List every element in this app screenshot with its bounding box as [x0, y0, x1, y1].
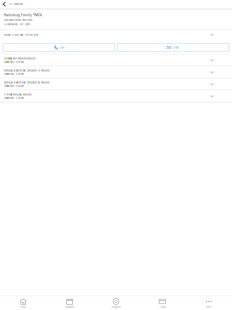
button[interactable]: Email: [117, 43, 229, 51]
staticText: Call: [59, 46, 64, 49]
staticText: Y Playhouse Hours: [4, 93, 31, 96]
staticText: until 9:00 pm: [10, 73, 24, 75]
staticText: until 9:00 pm: [10, 85, 24, 87]
button[interactable]: Open: [0, 30, 232, 43]
staticText: More: [206, 306, 211, 308]
staticText: until 8:00 pm: [10, 61, 24, 63]
button[interactable]: More: [186, 298, 232, 309]
staticText: Character Room Hours: [4, 57, 35, 60]
button[interactable]: Y Playhouse Hours: [0, 91, 232, 102]
staticText: Open: [4, 33, 11, 36]
button[interactable]: Cards: [139, 298, 186, 309]
staticText: Open: [4, 85, 9, 87]
button[interactable]: Group Exercise Studio A Hours: [0, 67, 232, 78]
button[interactable]: All Locations: [0, 0, 232, 8]
staticText: Group Exercise Studio B Hours: [4, 81, 49, 84]
staticText: 5:00 am - 9:00 pm: [12, 33, 38, 36]
button[interactable]: Call: [3, 43, 115, 51]
staticText: HARRISBURG, NC 28075: [4, 23, 30, 26]
staticText: 4130 Main Street Suite #100: [4, 19, 32, 21]
button[interactable]: Home: [0, 298, 46, 309]
button[interactable]: Programs: [93, 298, 139, 309]
staticText: Email: [172, 46, 179, 49]
staticText: Programs: [111, 306, 120, 308]
button[interactable]: Schedules: [46, 298, 93, 309]
staticText: until 1:00 pm: [10, 97, 24, 99]
button[interactable]: Group Exercise Studio B Hours: [0, 79, 232, 90]
staticText: All Locations: [9, 3, 23, 6]
staticText: Open: [4, 61, 9, 63]
staticText: Harrisburg Family YMCA: [4, 13, 42, 17]
button[interactable]: Character Room Hours: [0, 55, 232, 66]
staticText: Open: [4, 73, 9, 75]
staticText: Open: [4, 97, 9, 99]
staticText: Schedules: [65, 306, 74, 308]
staticText: Group Exercise Studio A Hours: [4, 69, 49, 72]
staticText: Home: [20, 306, 26, 308]
staticText: Cards: [159, 306, 165, 308]
